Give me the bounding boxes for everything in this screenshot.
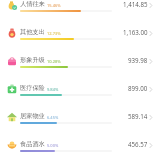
staticText: 939.98 [128,56,148,64]
staticText: 12.73% [47,31,61,36]
other: Details [149,58,153,65]
staticText: 1,414.85 [123,0,148,8]
staticText: 形象升级 [20,56,45,64]
button[interactable]: 居家物业 [0,103,160,131]
staticText: 899.00 [128,84,148,92]
button[interactable]: 其他支出 [0,19,160,47]
staticText: 9.84% [47,87,59,92]
other: Details [149,114,153,121]
staticText: 589.14 [128,112,148,120]
button[interactable]: 人情往来 [0,0,160,19]
other: Details [149,142,153,149]
staticText: 食品酒水 [20,140,45,148]
staticText: 5.00% [47,143,59,148]
staticText: 医疗保险 [20,84,45,92]
other: Details [149,2,153,9]
other: Details [149,30,153,37]
other: Details [149,86,153,93]
staticText: 1,163.00 [123,28,148,36]
button[interactable]: 食品酒水 [0,131,160,159]
staticText: 人情往来 [20,0,45,8]
staticText: 15.46% [47,3,61,8]
staticText: 其他支出 [20,28,45,36]
staticText: 居家物业 [20,112,45,120]
staticText: 6.45% [47,115,59,120]
staticText: 456.57 [128,140,148,148]
staticText: 10.28% [47,59,61,64]
button[interactable]: 形象升级 [0,47,160,75]
button[interactable]: 医疗保险 [0,75,160,103]
